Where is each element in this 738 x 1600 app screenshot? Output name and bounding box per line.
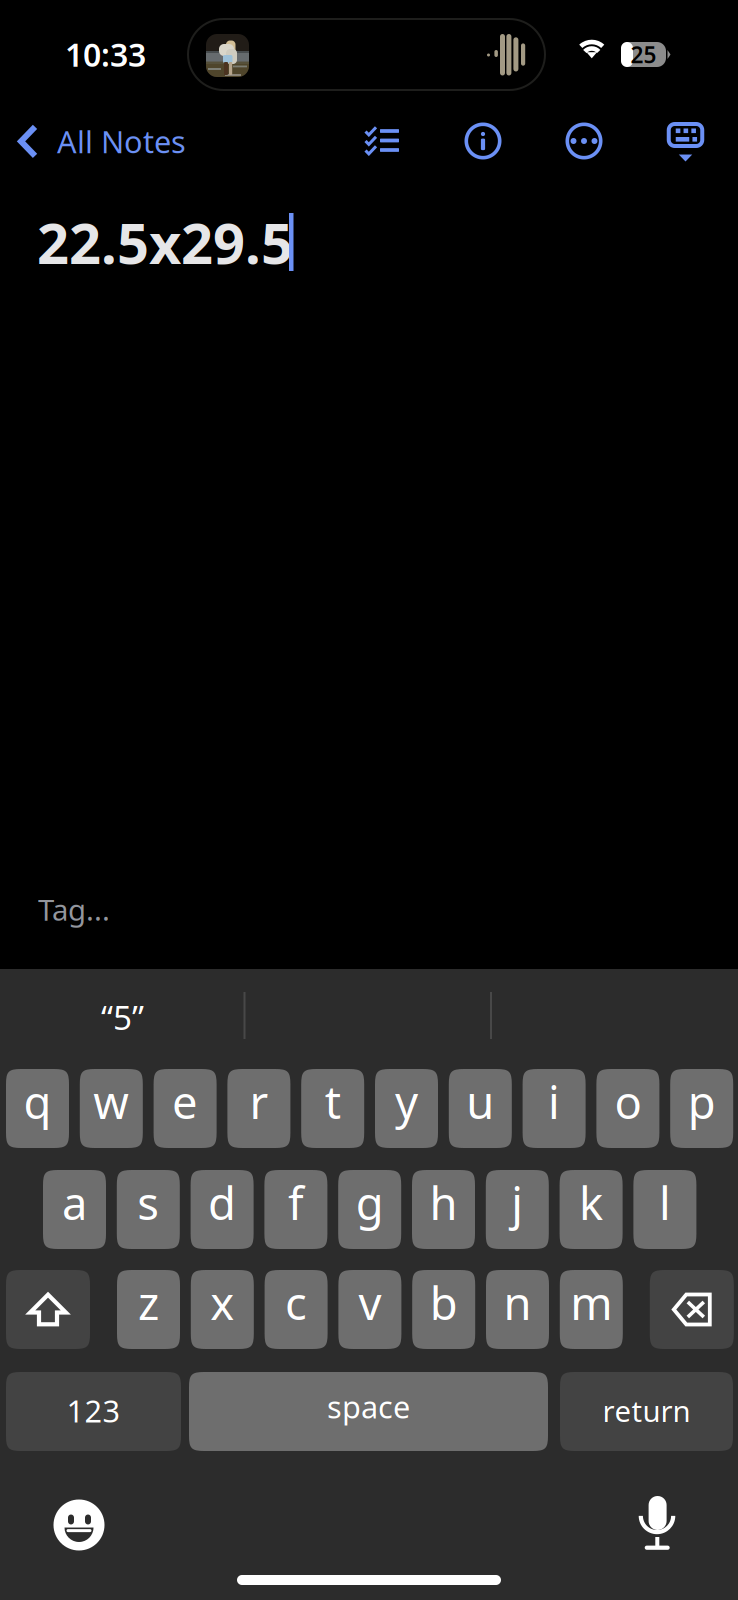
staticText: h [429, 1172, 457, 1233]
staticText: c [285, 1272, 307, 1333]
staticText: w [93, 1071, 129, 1132]
staticText: j [511, 1172, 523, 1233]
staticText: y [395, 1071, 418, 1132]
staticText: All Notes [57, 121, 186, 162]
staticText: m [570, 1272, 612, 1333]
staticText: z [138, 1272, 159, 1333]
staticText: x [210, 1272, 234, 1333]
button[interactable]: y [375, 1069, 438, 1148]
button[interactable]: f [264, 1170, 327, 1249]
button[interactable]: h [412, 1170, 475, 1249]
button[interactable]: x [191, 1270, 254, 1349]
button[interactable]: Delete [650, 1270, 734, 1349]
button[interactable]: u [449, 1069, 512, 1148]
button[interactable]: o [596, 1069, 659, 1148]
button[interactable]: Checklist [360, 120, 404, 162]
button[interactable]: t [301, 1069, 364, 1148]
staticText: l [659, 1172, 671, 1233]
staticText: Tag... [38, 890, 110, 929]
button[interactable]: Shift [6, 1270, 90, 1349]
button[interactable]: r [227, 1069, 290, 1148]
button[interactable]: i [523, 1069, 586, 1148]
staticText: i [548, 1071, 560, 1132]
staticText: 22.5x29.5 [37, 205, 293, 279]
button[interactable]: Emoji [42, 1488, 116, 1562]
button[interactable]: space [189, 1372, 548, 1451]
staticText: e [172, 1071, 198, 1132]
button[interactable]: q [6, 1069, 69, 1148]
button[interactable]: e [154, 1069, 217, 1148]
button[interactable]: g [338, 1170, 401, 1249]
staticText: o [614, 1071, 641, 1132]
staticText: v [358, 1272, 381, 1333]
button[interactable]: All Notes [17, 113, 186, 170]
button[interactable]: More [563, 120, 605, 162]
button[interactable]: d [191, 1170, 254, 1249]
button[interactable]: Dictate [620, 1486, 694, 1560]
button[interactable]: Hide Keyboard [664, 121, 706, 163]
staticText: a [62, 1172, 87, 1233]
staticText: 25 [630, 39, 656, 69]
staticText: “5” [101, 995, 144, 1039]
button[interactable]: Note Info [462, 120, 504, 162]
staticText: g [356, 1172, 384, 1233]
button[interactable]: v [338, 1270, 401, 1349]
staticText: d [208, 1172, 236, 1233]
button[interactable]: p [670, 1069, 733, 1148]
button[interactable]: b [412, 1270, 475, 1349]
staticText: s [137, 1172, 159, 1233]
button[interactable]: a [43, 1170, 106, 1249]
button[interactable]: w [80, 1069, 143, 1148]
staticText: f [288, 1172, 304, 1233]
button[interactable]: 123 [6, 1372, 181, 1451]
button[interactable]: z [117, 1270, 180, 1349]
button[interactable]: m [560, 1270, 623, 1349]
button[interactable]: l [633, 1170, 696, 1249]
staticText: 123 [66, 1390, 120, 1431]
staticText: return [602, 1391, 690, 1430]
staticText: u [466, 1071, 494, 1132]
button[interactable]: j [486, 1170, 549, 1249]
staticText: b [430, 1272, 458, 1333]
staticText: q [23, 1071, 51, 1132]
staticText: 10:33 [65, 33, 146, 75]
staticText: space [327, 1386, 410, 1427]
staticText: p [688, 1071, 716, 1132]
button[interactable]: k [560, 1170, 623, 1249]
staticText: k [579, 1172, 603, 1233]
staticText: r [249, 1071, 268, 1132]
button[interactable]: return [560, 1372, 733, 1451]
staticText: t [325, 1071, 341, 1132]
button[interactable]: c [265, 1270, 328, 1349]
button[interactable]: n [486, 1270, 549, 1349]
button[interactable]: s [117, 1170, 180, 1249]
staticText: n [503, 1272, 531, 1333]
